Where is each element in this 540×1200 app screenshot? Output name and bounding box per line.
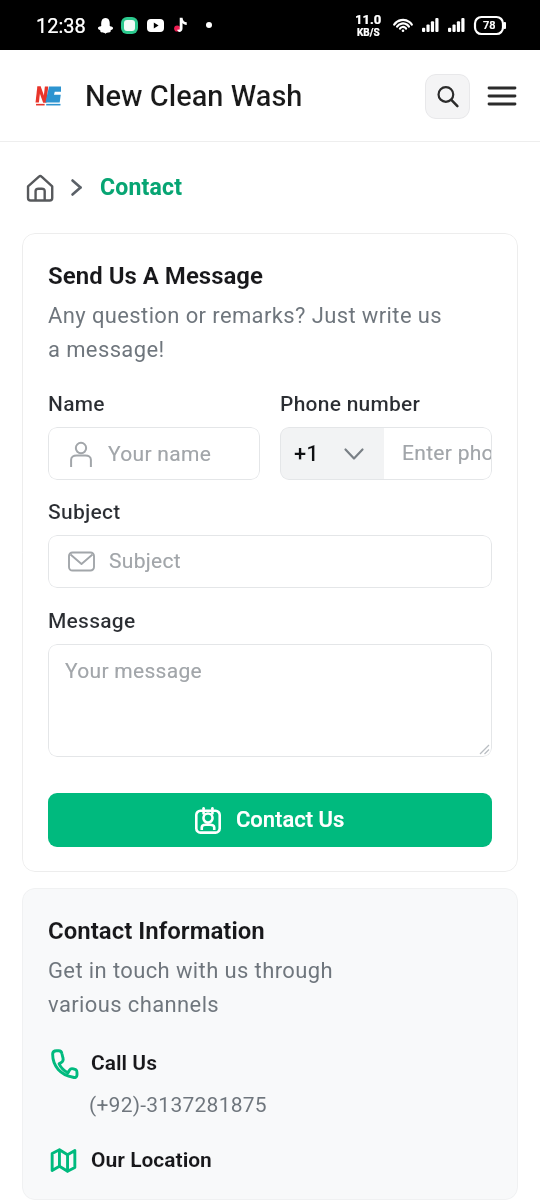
staticText: Any question or remarks? Just write us a… <box>48 303 453 362</box>
button[interactable]: Search <box>425 74 470 119</box>
staticText: Subject <box>109 549 181 574</box>
staticText: New Clean Wash <box>85 79 303 113</box>
button[interactable]: Home <box>26 174 54 202</box>
staticText: Call Us <box>91 1051 157 1076</box>
button[interactable]: Contact <box>100 174 183 201</box>
staticText: Contact Information <box>48 917 265 945</box>
staticText: Send Us A Message <box>48 262 264 290</box>
button[interactable]: Call Us <box>48 1049 492 1077</box>
button[interactable]: Contact Us <box>48 793 492 847</box>
button[interactable]: Your name <box>48 427 260 480</box>
staticText: 12:38 <box>36 14 86 37</box>
staticText: Your name <box>108 442 212 467</box>
button[interactable]: Your message <box>48 644 492 757</box>
button[interactable]: Enter phone <box>384 427 492 480</box>
staticText: 11.0 <box>355 12 382 27</box>
staticText: 78 <box>483 19 496 32</box>
button[interactable]: Our Location <box>48 1148 492 1173</box>
staticText: Get in touch with us through various cha… <box>48 958 368 1017</box>
staticText: Our Location <box>91 1148 212 1173</box>
staticText: KB/S <box>357 27 380 39</box>
staticText: Contact Us <box>236 807 345 833</box>
staticText: Enter phone <box>402 441 492 466</box>
staticText: Phone number <box>280 392 421 417</box>
staticText: Subject <box>48 500 121 525</box>
staticText: (+92)-3137281875 <box>89 1093 267 1118</box>
button[interactable]: Country code +1 <box>280 427 384 480</box>
staticText: Name <box>48 392 105 417</box>
button[interactable]: Menu <box>488 82 516 110</box>
staticText: +1 <box>294 441 319 467</box>
button[interactable]: Subject <box>48 535 492 588</box>
staticText: Message <box>48 609 136 634</box>
staticText: Your message <box>65 659 203 684</box>
